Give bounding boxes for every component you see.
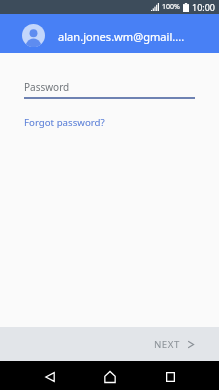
button[interactable]: Recent apps [140, 361, 200, 390]
staticText: Forgot password? [24, 116, 105, 129]
staticText: Password [24, 80, 70, 94]
staticText: alan.jones.wm@gmail.... [58, 29, 185, 44]
button[interactable]: Forgot password? [24, 116, 105, 129]
button[interactable]: alan.jones.wm@gmail.... [0, 14, 219, 53]
staticText: 100% [162, 2, 180, 12]
button[interactable]: Home [80, 361, 140, 390]
button[interactable]: NEXT [136, 327, 219, 361]
staticText: 10:00 [192, 1, 216, 13]
button[interactable]: Password [24, 80, 195, 99]
button[interactable]: Back [20, 361, 80, 390]
staticText: NEXT [154, 338, 180, 351]
